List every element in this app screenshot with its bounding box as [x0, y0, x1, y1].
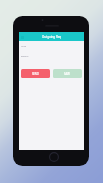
button[interactable]: Replace: [21, 55, 82, 61]
button[interactable]: Write: [21, 45, 82, 51]
button[interactable]: SEND: [21, 69, 50, 78]
staticText: SAVE: [64, 72, 71, 76]
button[interactable]: Home: [49, 152, 59, 162]
staticText: SEND: [32, 72, 39, 76]
staticText: Replace: [21, 55, 29, 58]
button[interactable]: Navigate up: [19, 34, 25, 40]
staticText: Write: [21, 45, 27, 48]
button[interactable]: SAVE: [53, 69, 82, 78]
staticText: Outgoing Req: [42, 35, 62, 39]
